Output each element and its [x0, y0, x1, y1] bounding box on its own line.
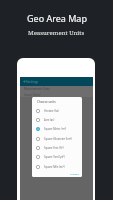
staticText: Settings [26, 80, 39, 84]
staticText: Square Feet (ft²) [44, 146, 64, 150]
staticText: Square Kilometer (km²) [44, 137, 73, 141]
staticText: Choose units [37, 100, 56, 104]
button[interactable]: Square Feet (ft²) [32, 143, 82, 152]
button[interactable]: Acre (ac) [32, 115, 82, 124]
staticText: Square Meter [24, 93, 41, 97]
other: Back [23, 80, 26, 83]
button[interactable]: Square Kilometer (km²) [32, 134, 82, 143]
staticText: Square Mile (mi²) [44, 165, 65, 169]
button[interactable]: Square Mile (mi²) [32, 162, 82, 171]
staticText: Measurement Units [28, 29, 85, 37]
staticText: CANCEL [70, 172, 79, 175]
staticText: Geo Area Map [27, 12, 87, 24]
button[interactable]: CANCEL [69, 171, 80, 176]
button[interactable]: Hectare (ha) [32, 106, 82, 115]
staticText: Square Yard (yd²) [44, 155, 65, 159]
staticText: Measurement Units [24, 87, 50, 91]
button[interactable]: Square Yard (yd²) [32, 152, 82, 161]
staticText: Acre (ac) [44, 118, 55, 122]
button[interactable]: Square Meter (m²) [32, 124, 82, 133]
staticText: Hectare (ha) [44, 109, 59, 113]
staticText: Square Meter (m²) [44, 127, 67, 131]
